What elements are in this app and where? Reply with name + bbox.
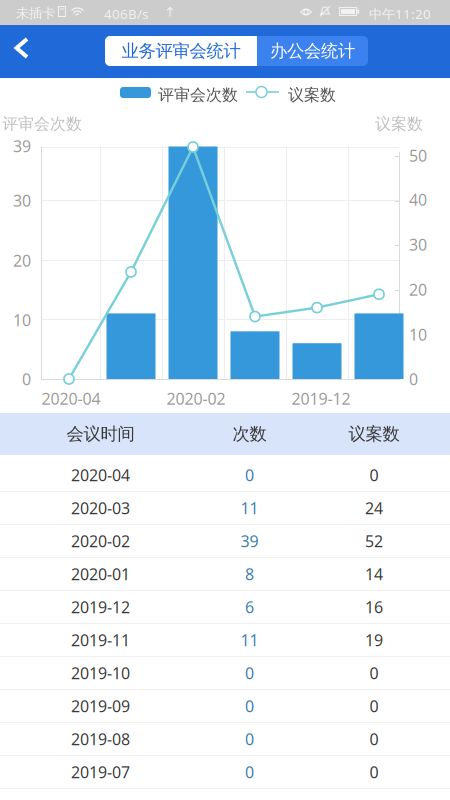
staticText: 19 [365, 629, 383, 651]
staticText: 2019-12 [291, 388, 350, 409]
staticText: 50 [409, 145, 427, 166]
staticText: 0 [245, 662, 254, 684]
button[interactable]: 办公会统计 [257, 36, 368, 66]
staticText: 中午11:20 [369, 5, 431, 23]
button[interactable]: 2019-12 [0, 591, 450, 624]
staticText: 39 [240, 530, 258, 552]
staticText: 2020-04 [71, 464, 130, 486]
staticText: 40 [409, 189, 427, 210]
staticText: 10 [13, 309, 31, 331]
staticText: 2020-03 [71, 497, 130, 519]
staticText: 0 [369, 662, 378, 684]
button[interactable]: Back [14, 38, 44, 68]
staticText: 评审会次数 [2, 114, 82, 134]
staticText: 14 [365, 563, 383, 585]
button[interactable]: 2019-10 [0, 657, 450, 690]
staticText: 11 [240, 497, 258, 519]
staticText: 10 [409, 324, 427, 345]
staticText: 议案数 [348, 423, 399, 445]
staticText: 20 [409, 279, 427, 300]
staticText: 406B/s [104, 5, 148, 23]
staticText: 0 [245, 761, 254, 783]
staticText: 6 [245, 596, 254, 618]
staticText: 0 [245, 695, 254, 717]
staticText: 议案数 [288, 85, 336, 105]
staticText: 2019-09 [71, 695, 130, 717]
staticText: 2020-04 [41, 388, 100, 409]
staticText: 39 [13, 135, 31, 157]
staticText: 2019-10 [71, 662, 130, 684]
staticText: 2019-11 [71, 629, 130, 651]
button[interactable]: 2020-02 [0, 525, 450, 558]
staticText: 0 [369, 695, 378, 717]
staticText: 11 [240, 629, 258, 651]
staticText: 评审会次数 [158, 85, 238, 105]
staticText: 0 [245, 464, 254, 486]
staticText: 2019-07 [71, 761, 130, 783]
button[interactable]: 2019-08 [0, 723, 450, 756]
staticText: 52 [365, 530, 383, 552]
staticText: 办公会统计 [270, 40, 355, 62]
staticText: 2019-12 [71, 596, 130, 618]
staticText: 0 [369, 728, 378, 750]
button[interactable]: 业务评审会统计 [105, 36, 257, 66]
button[interactable]: 2020-03 [0, 492, 450, 525]
staticText: 30 [13, 190, 31, 211]
button[interactable]: 2019-07 [0, 756, 450, 789]
staticText: 20 [13, 250, 31, 271]
staticText: 2019-08 [71, 728, 130, 750]
button[interactable]: 2019-09 [0, 690, 450, 723]
staticText: 16 [365, 596, 383, 618]
staticText: 8 [245, 563, 254, 585]
staticText: 0 [369, 464, 378, 486]
staticText: 0 [245, 728, 254, 750]
staticText: 0 [369, 761, 378, 783]
staticText: 业务评审会统计 [121, 40, 240, 62]
button[interactable]: 2020-04 [0, 459, 450, 492]
staticText: 2020-02 [166, 388, 225, 409]
staticText: 2020-01 [71, 563, 130, 585]
staticText: 0 [22, 368, 31, 390]
staticText: 0 [409, 368, 418, 390]
staticText: 30 [409, 234, 427, 255]
staticText: 会议时间 [66, 423, 134, 445]
staticText: 未插卡 [16, 5, 55, 21]
staticText: 议案数 [375, 114, 423, 134]
button[interactable]: 2019-11 [0, 624, 450, 657]
staticText: 2020-02 [71, 530, 130, 552]
staticText: 次数 [232, 423, 266, 445]
staticText: 24 [365, 497, 383, 519]
button[interactable]: 2020-01 [0, 558, 450, 591]
